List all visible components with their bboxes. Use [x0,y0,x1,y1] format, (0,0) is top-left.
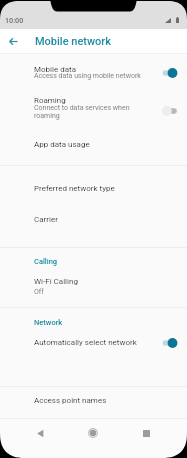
button[interactable]: On [157,335,182,351]
button[interactable]: Back [24,417,56,449]
button[interactable] [0,57,187,90]
button[interactable] [0,389,187,415]
staticText: Roaming [34,96,66,105]
staticText: Connect to data services when [34,104,130,112]
staticText: App data usage [34,140,90,149]
staticText: Preferred network type [34,184,115,193]
button[interactable] [0,206,187,236]
staticText: Network [34,318,63,327]
button[interactable]: Home [77,417,109,449]
button[interactable] [0,90,187,127]
staticText: Carrier [34,215,58,224]
staticText: 10:00 [5,16,24,24]
staticText: Access data using mobile network [34,72,141,80]
button[interactable]: Recent apps [130,417,162,449]
staticText: roaming [34,112,60,120]
button[interactable]: On [157,65,182,81]
button[interactable] [0,332,187,356]
button[interactable] [0,272,187,302]
staticText: Mobile data [34,65,76,74]
staticText: Wi-Fi Calling [34,277,78,286]
button[interactable] [0,131,187,158]
staticText: Off [34,288,44,296]
staticText: Mobile network [35,35,111,48]
staticText: Calling [34,257,58,266]
button[interactable]: Mobile network [0,29,187,53]
button[interactable]: Off [157,103,182,119]
staticText: Access point names [34,396,107,405]
button[interactable]: Navigate up [1,29,25,53]
button[interactable] [0,174,187,204]
staticText: Automatically select network [34,338,137,347]
